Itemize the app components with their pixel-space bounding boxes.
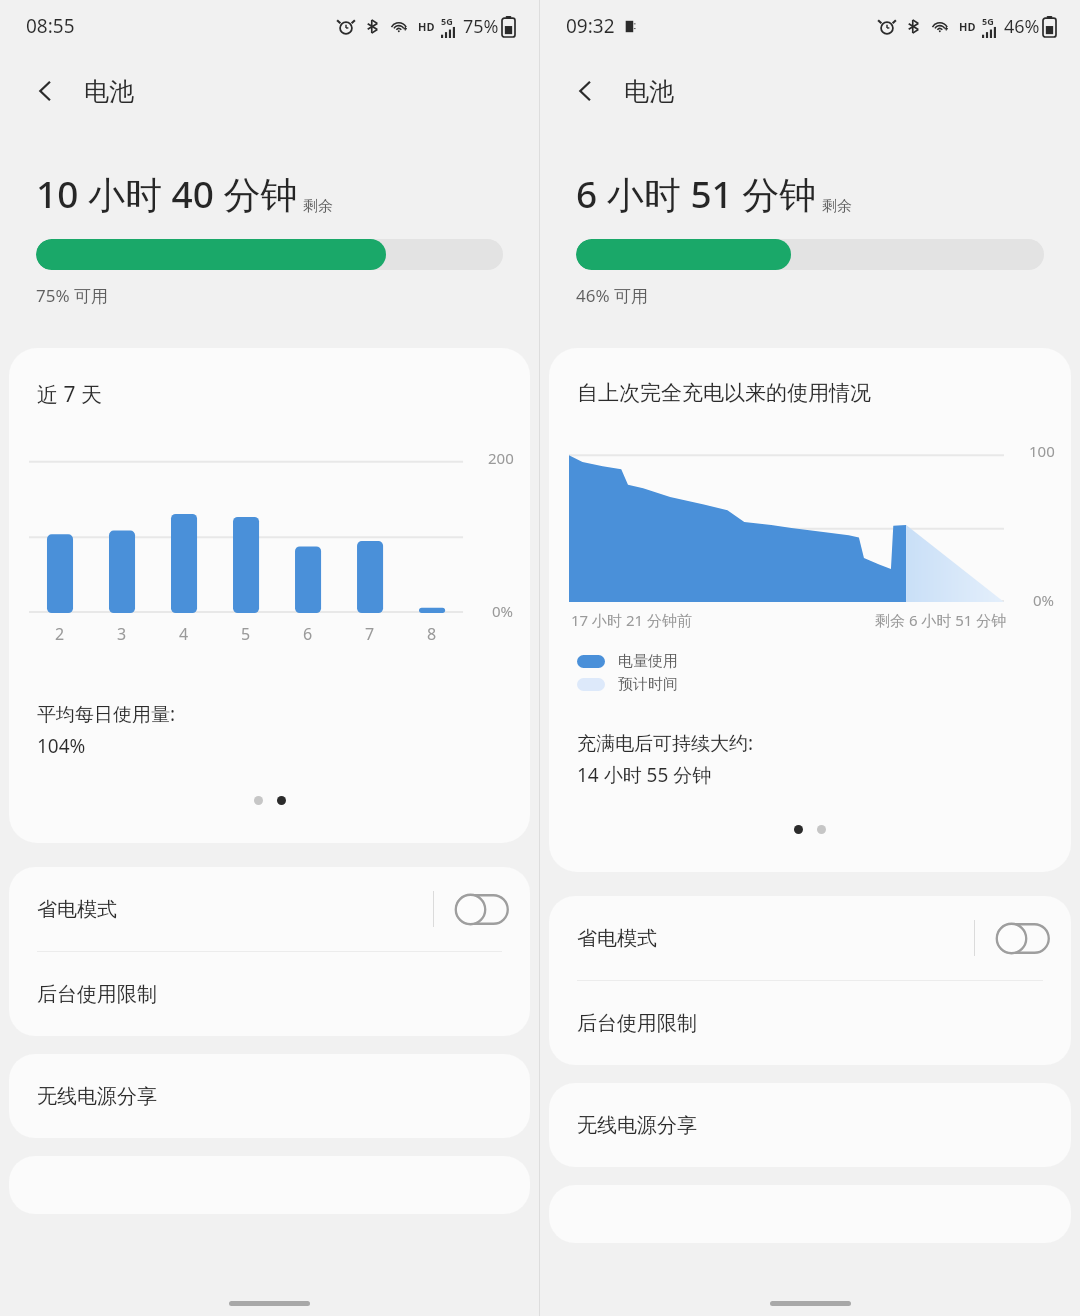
staticText: 预计时间 [618,675,678,694]
staticText: 4 [179,623,189,645]
staticText: 省电模式 [37,897,433,922]
staticText: 104% [37,733,86,759]
button[interactable]: 自上次完全充电以来的使用情况 [549,348,1071,872]
staticText: HD [418,19,435,34]
staticText: 电池 [624,76,674,107]
staticText: 电量使用 [618,652,678,671]
button[interactable]: Back [540,52,1080,130]
staticText: 剩余 [303,197,333,216]
staticText: 7 [365,623,375,645]
staticText: 75% [463,14,499,39]
staticText: 后台使用限制 [37,982,157,1007]
staticText: 充满电后可持续大约: [577,730,754,756]
staticText: 8 [427,623,437,645]
staticText: 5G [982,15,994,27]
staticText: 10 小时 40 分钟 [36,168,298,219]
button[interactable]: 省电模式 开关 [993,918,1053,958]
staticText: 无线电源分享 [577,1113,697,1138]
button[interactable]: 无线电源分享 [549,1083,1071,1167]
button[interactable]: 电量使用 [577,652,678,671]
button[interactable]: 预计时间 [577,675,678,694]
staticText: 5G [441,15,453,27]
staticText: 无线电源分享 [37,1084,157,1109]
staticText: 自上次完全充电以来的使用情况 [577,380,871,406]
button[interactable]: 省电模式 [549,896,1071,980]
staticText: 200 [488,448,514,468]
staticText: 省电模式 [577,926,974,951]
staticText: 6 [303,623,313,645]
button[interactable] [794,825,803,834]
button[interactable]: 省电模式 [9,867,530,951]
button[interactable]: 省电模式 开关 [452,889,512,929]
staticText: 6 小时 51 分钟 [576,168,817,219]
staticText: HD [959,19,976,34]
button[interactable]: Back [0,52,539,130]
button[interactable]: Back [20,65,72,117]
staticText: 0% [1033,590,1055,610]
staticText: 电池 [84,76,134,107]
staticText: 46% 可用 [576,284,648,307]
staticText: 17 小时 21 分钟前 [571,610,693,630]
button[interactable] [277,796,286,805]
button[interactable]: 近 7 天 [9,348,530,843]
staticText: 0% [492,601,514,621]
staticText: 平均每日使用量: [37,701,176,727]
staticText: 09:32 [566,13,615,39]
button[interactable] [254,796,263,805]
staticText: 5 [241,623,251,645]
staticText: 后台使用限制 [577,1011,697,1036]
staticText: 剩余 [822,197,852,216]
staticText: 3 [117,623,127,645]
button[interactable]: 无线电源分享 [9,1054,530,1138]
staticText: 2 [55,623,65,645]
staticText: 75% 可用 [36,284,108,307]
staticText: 08:55 [26,13,75,39]
staticText: 14 小时 55 分钟 [577,762,712,788]
staticText: 近 7 天 [37,380,102,409]
staticText: 46% [1004,14,1040,39]
button[interactable]: 后台使用限制 [549,981,1071,1065]
button[interactable]: Back [560,65,612,117]
button[interactable]: 后台使用限制 [9,952,530,1036]
staticText: 剩余 6 小时 51 分钟 [875,610,1007,630]
staticText: 100 [1029,441,1055,461]
button[interactable] [817,825,826,834]
